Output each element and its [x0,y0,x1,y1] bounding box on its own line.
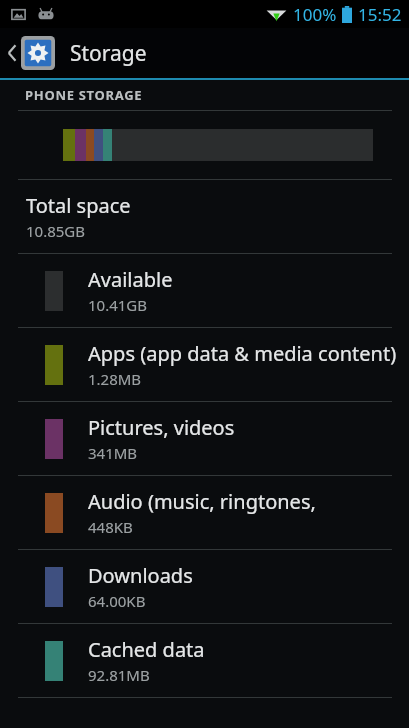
button[interactable]: Available [0,254,409,327]
staticText: Audio (music, ringtones, podcasts) [88,488,409,515]
staticText: 10.41GB [88,295,148,315]
staticText: Downloads [88,562,193,589]
staticText: 100% [293,3,337,26]
staticText: 1.28MB [88,369,142,389]
staticText: 341MB [88,443,138,463]
button[interactable]: Total space [0,180,409,253]
button[interactable]: Pictures, videos [0,402,409,475]
button[interactable]: Navigate up to Settings [0,28,409,78]
staticText: Cached data [88,636,205,663]
staticText: 448KB [88,517,133,537]
staticText: Available [88,266,173,293]
staticText: PHONE STORAGE [25,86,143,104]
staticText: Pictures, videos [88,414,235,441]
staticText: Storage [70,39,147,68]
staticText: Total space [26,192,131,219]
button[interactable]: Downloads [0,550,409,623]
staticText: 64.00KB [88,591,146,611]
button[interactable]: Apps (app data & media content) [0,328,409,401]
staticText: 92.81MB [88,665,150,685]
button[interactable]: Cached data [0,624,409,697]
button[interactable]: Audio (music, ringtones, podcasts) [0,476,409,549]
staticText: Apps (app data & media content) [88,340,397,367]
staticText: 10.85GB [26,221,86,241]
staticText: 15:52 [358,3,402,26]
